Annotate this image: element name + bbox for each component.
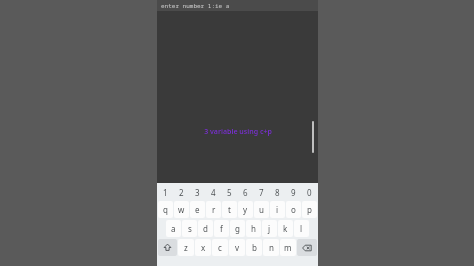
staticText: y	[243, 204, 248, 215]
button[interactable]: p	[302, 201, 317, 218]
staticText: d	[203, 223, 208, 234]
button[interactable]: Shift	[158, 239, 177, 256]
staticText: o	[291, 204, 296, 215]
staticText: 5	[227, 187, 232, 198]
staticText: 6	[243, 187, 248, 198]
staticText: n	[269, 242, 274, 253]
button[interactable]: 8	[270, 186, 285, 199]
button[interactable]: u	[254, 201, 269, 218]
staticText: j	[268, 223, 271, 234]
button[interactable]: n	[263, 239, 279, 256]
button[interactable]: 6	[238, 186, 253, 199]
staticText: q	[163, 204, 168, 215]
staticText: 2	[179, 187, 184, 198]
staticText: l	[300, 223, 303, 234]
staticText: e	[195, 204, 200, 215]
button[interactable]: b	[246, 239, 262, 256]
staticText: g	[235, 223, 240, 234]
staticText: h	[251, 223, 256, 234]
button[interactable]: d	[198, 220, 213, 237]
button[interactable]: 2	[174, 186, 189, 199]
staticText: enter number 1:ie a	[161, 2, 230, 10]
button[interactable]: w	[174, 201, 189, 218]
button[interactable]: q	[158, 201, 173, 218]
button[interactable]: a	[166, 220, 181, 237]
button[interactable]: Backspace	[297, 239, 317, 256]
button[interactable]: 9	[286, 186, 301, 199]
button[interactable]: 1	[158, 186, 173, 199]
staticText: r	[212, 204, 216, 215]
staticText: p	[307, 204, 312, 215]
button[interactable]: t	[222, 201, 237, 218]
button[interactable]: l	[294, 220, 309, 237]
button[interactable]: j	[262, 220, 277, 237]
staticText: x	[201, 242, 206, 253]
button[interactable]: f	[214, 220, 229, 237]
button[interactable]: 0	[302, 186, 317, 199]
button[interactable]: 4	[206, 186, 221, 199]
staticText: c	[218, 242, 222, 253]
staticText: v	[235, 242, 240, 253]
button[interactable]: m	[280, 239, 296, 256]
button[interactable]: s	[182, 220, 197, 237]
button[interactable]: 3	[190, 186, 205, 199]
staticText: 4	[211, 187, 216, 198]
staticText: m	[284, 242, 292, 253]
button[interactable]: k	[278, 220, 293, 237]
button[interactable]: 5	[222, 186, 237, 199]
staticText: 9	[291, 187, 296, 198]
staticText: s	[188, 223, 192, 234]
staticText: b	[252, 242, 257, 253]
button[interactable]: g	[230, 220, 245, 237]
staticText: 3 variable using c+p	[204, 127, 272, 137]
staticText: 8	[275, 187, 280, 198]
button[interactable]: z	[178, 239, 194, 256]
button[interactable]: e	[190, 201, 205, 218]
staticText: 7	[259, 187, 264, 198]
button[interactable]: x	[195, 239, 211, 256]
staticText: z	[184, 242, 188, 253]
button[interactable]: h	[246, 220, 261, 237]
button[interactable]: o	[286, 201, 301, 218]
staticText: a	[171, 223, 176, 234]
staticText: f	[220, 223, 223, 234]
button[interactable]: r	[206, 201, 221, 218]
button[interactable]: v	[229, 239, 245, 256]
staticText: 0	[307, 187, 312, 198]
button[interactable]: c	[212, 239, 228, 256]
staticText: u	[259, 204, 264, 215]
button[interactable]: i	[270, 201, 285, 218]
staticText: 3	[195, 187, 200, 198]
staticText: k	[283, 223, 288, 234]
button[interactable]: y	[238, 201, 253, 218]
staticText: 1	[163, 187, 168, 198]
staticText: i	[276, 204, 279, 215]
button[interactable]: 7	[254, 186, 269, 199]
staticText: t	[228, 204, 231, 215]
staticText: w	[178, 204, 185, 215]
